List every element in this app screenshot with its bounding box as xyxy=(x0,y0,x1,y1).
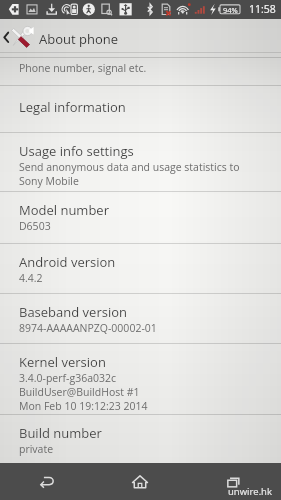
staticText: 4.4.2 xyxy=(19,271,43,285)
staticText: BuildUser@BuildHost #1 xyxy=(19,385,140,399)
staticText: 8974-AAAAANPZQ-00002-01 xyxy=(19,321,157,335)
button[interactable]: Back xyxy=(0,463,93,500)
staticText: Send anonymous data and usage statistics… xyxy=(19,160,240,174)
staticText: Usage info settings xyxy=(19,142,134,160)
staticText: Build number xyxy=(19,424,102,442)
staticText: Model number xyxy=(19,201,109,219)
staticText: private xyxy=(19,442,54,456)
button[interactable]: Navigate up xyxy=(0,19,281,53)
staticText: Mon Feb 10 19:12:23 2014 xyxy=(19,399,148,413)
staticText: Android version xyxy=(19,253,116,271)
button[interactable]: Kernel version xyxy=(0,344,281,414)
button[interactable] xyxy=(0,53,281,57)
staticText: Legal information xyxy=(19,98,126,116)
button[interactable]: Home xyxy=(93,463,187,500)
button[interactable]: Usage info settings xyxy=(0,133,281,191)
staticText: Phone number, signal etc. xyxy=(19,61,147,75)
staticText: unwire.hk xyxy=(228,485,272,498)
staticText: About phone xyxy=(39,30,118,48)
staticText: Sony Mobile xyxy=(19,174,79,188)
button[interactable]: Build number xyxy=(0,415,281,463)
staticText: 94% xyxy=(223,5,238,15)
button[interactable]: Baseband version xyxy=(0,294,281,343)
staticText: 11:58 xyxy=(249,2,276,16)
button[interactable]: Recent apps xyxy=(187,463,281,500)
staticText: 3.4.0-perf-g36a032c xyxy=(19,371,117,385)
staticText: Baseband version xyxy=(19,303,127,321)
button[interactable]: Android version xyxy=(0,244,281,293)
button[interactable]: Legal information xyxy=(0,86,281,132)
button[interactable]: Model number xyxy=(0,192,281,243)
staticText: D6503 xyxy=(19,219,51,233)
staticText: Kernel version xyxy=(19,353,106,371)
button[interactable]: Phone number, signal etc. xyxy=(0,58,281,85)
